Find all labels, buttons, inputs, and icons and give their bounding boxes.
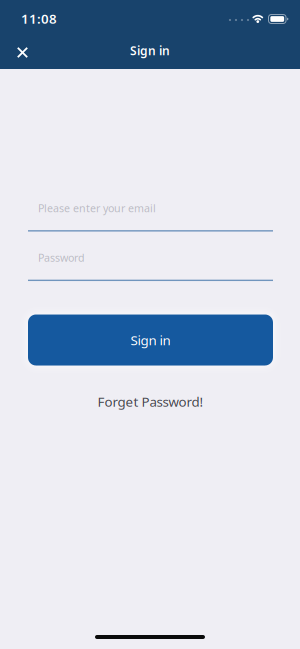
button[interactable]: Password	[28, 251, 273, 281]
button[interactable]: Close	[0, 36, 40, 69]
staticText: Password	[38, 251, 85, 265]
staticText: Sign in	[130, 331, 170, 349]
button[interactable]: Sign in	[28, 314, 273, 365]
staticText: Sign in	[130, 42, 170, 58]
button[interactable]: Forget Password!	[85, 387, 215, 416]
staticText: Please enter your email	[38, 201, 156, 215]
staticText: Forget Password!	[97, 393, 203, 410]
staticText: 11:08	[21, 10, 57, 27]
button[interactable]: Please enter your email	[28, 201, 273, 232]
